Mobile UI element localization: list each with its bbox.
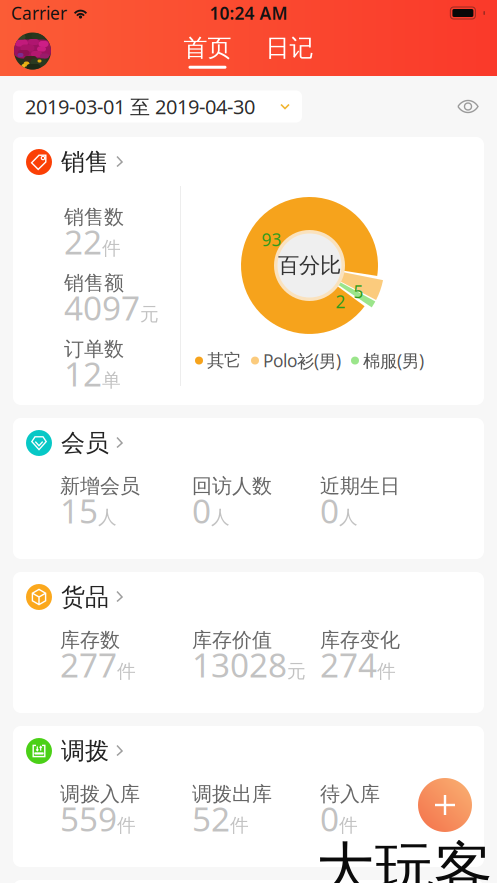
button[interactable]: 会员: [26, 429, 484, 457]
button[interactable]: 销售: [26, 148, 484, 176]
staticText: 新增会员: [60, 474, 140, 498]
staticText: 件: [102, 237, 121, 260]
staticText: 销售额: [64, 271, 124, 295]
staticText: 回访人数: [192, 474, 272, 498]
staticText: 库存价值: [192, 628, 272, 652]
staticText: 近期生日: [320, 474, 400, 498]
staticText: 13028: [192, 642, 287, 687]
staticText: 待入库: [320, 782, 380, 806]
staticText: 559: [60, 796, 117, 841]
staticText: 首页: [183, 33, 231, 63]
staticText: 棉服(男): [363, 349, 424, 372]
staticText: 货品: [61, 582, 109, 612]
staticText: 4097: [64, 285, 140, 330]
staticText: 93: [261, 228, 281, 251]
staticText: 277: [60, 642, 117, 687]
button[interactable]: Toggle visibility: [453, 94, 483, 118]
staticText: 调拨出库: [192, 782, 272, 806]
staticText: 调拨入库: [60, 782, 140, 806]
staticText: 2019-03-01 至 2019-04-30: [25, 93, 255, 120]
staticText: 人: [211, 506, 230, 529]
staticText: 5: [353, 280, 363, 303]
button[interactable]: Profile: [14, 32, 51, 69]
staticText: 274: [320, 642, 377, 687]
staticText: 库存数: [60, 628, 120, 652]
staticText: 件: [230, 814, 249, 837]
staticText: 销售: [61, 147, 109, 177]
staticText: 人: [339, 506, 358, 529]
staticText: 0: [320, 796, 339, 841]
staticText: 12: [64, 351, 102, 396]
staticText: 会员: [61, 428, 109, 458]
staticText: 单: [102, 369, 121, 392]
staticText: Polo衫(男): [263, 349, 341, 372]
staticText: 件: [377, 660, 396, 683]
button[interactable]: 日记: [261, 33, 317, 69]
staticText: 件: [339, 814, 358, 837]
staticText: Carrier: [11, 1, 67, 24]
staticText: 销售数: [64, 205, 124, 229]
button[interactable]: 调拨: [26, 737, 484, 765]
staticText: 0: [320, 488, 339, 533]
staticText: 调拨: [61, 736, 109, 766]
staticText: 其它: [207, 350, 241, 371]
staticText: 52: [192, 796, 230, 841]
staticText: 15: [60, 488, 98, 533]
staticText: 人: [98, 506, 117, 529]
staticText: 订单数: [64, 337, 124, 361]
staticText: 库存变化: [320, 628, 400, 652]
staticText: 百分比: [278, 252, 341, 279]
staticText: 2: [335, 290, 345, 313]
button[interactable]: Add: [418, 778, 472, 832]
staticText: 10:24 AM: [209, 1, 287, 24]
button[interactable]: 首页: [179, 33, 235, 69]
staticText: 日记: [265, 33, 313, 63]
staticText: 件: [117, 814, 136, 837]
button[interactable]: 货品: [26, 583, 484, 611]
staticText: 件: [117, 660, 136, 683]
staticText: 22: [64, 219, 102, 264]
staticText: 元: [140, 303, 159, 326]
button[interactable]: 2019-03-01 至 2019-04-30: [13, 90, 302, 122]
staticText: 0: [192, 488, 211, 533]
staticText: 元: [287, 660, 306, 683]
staticText: 大玩客: [316, 834, 493, 883]
